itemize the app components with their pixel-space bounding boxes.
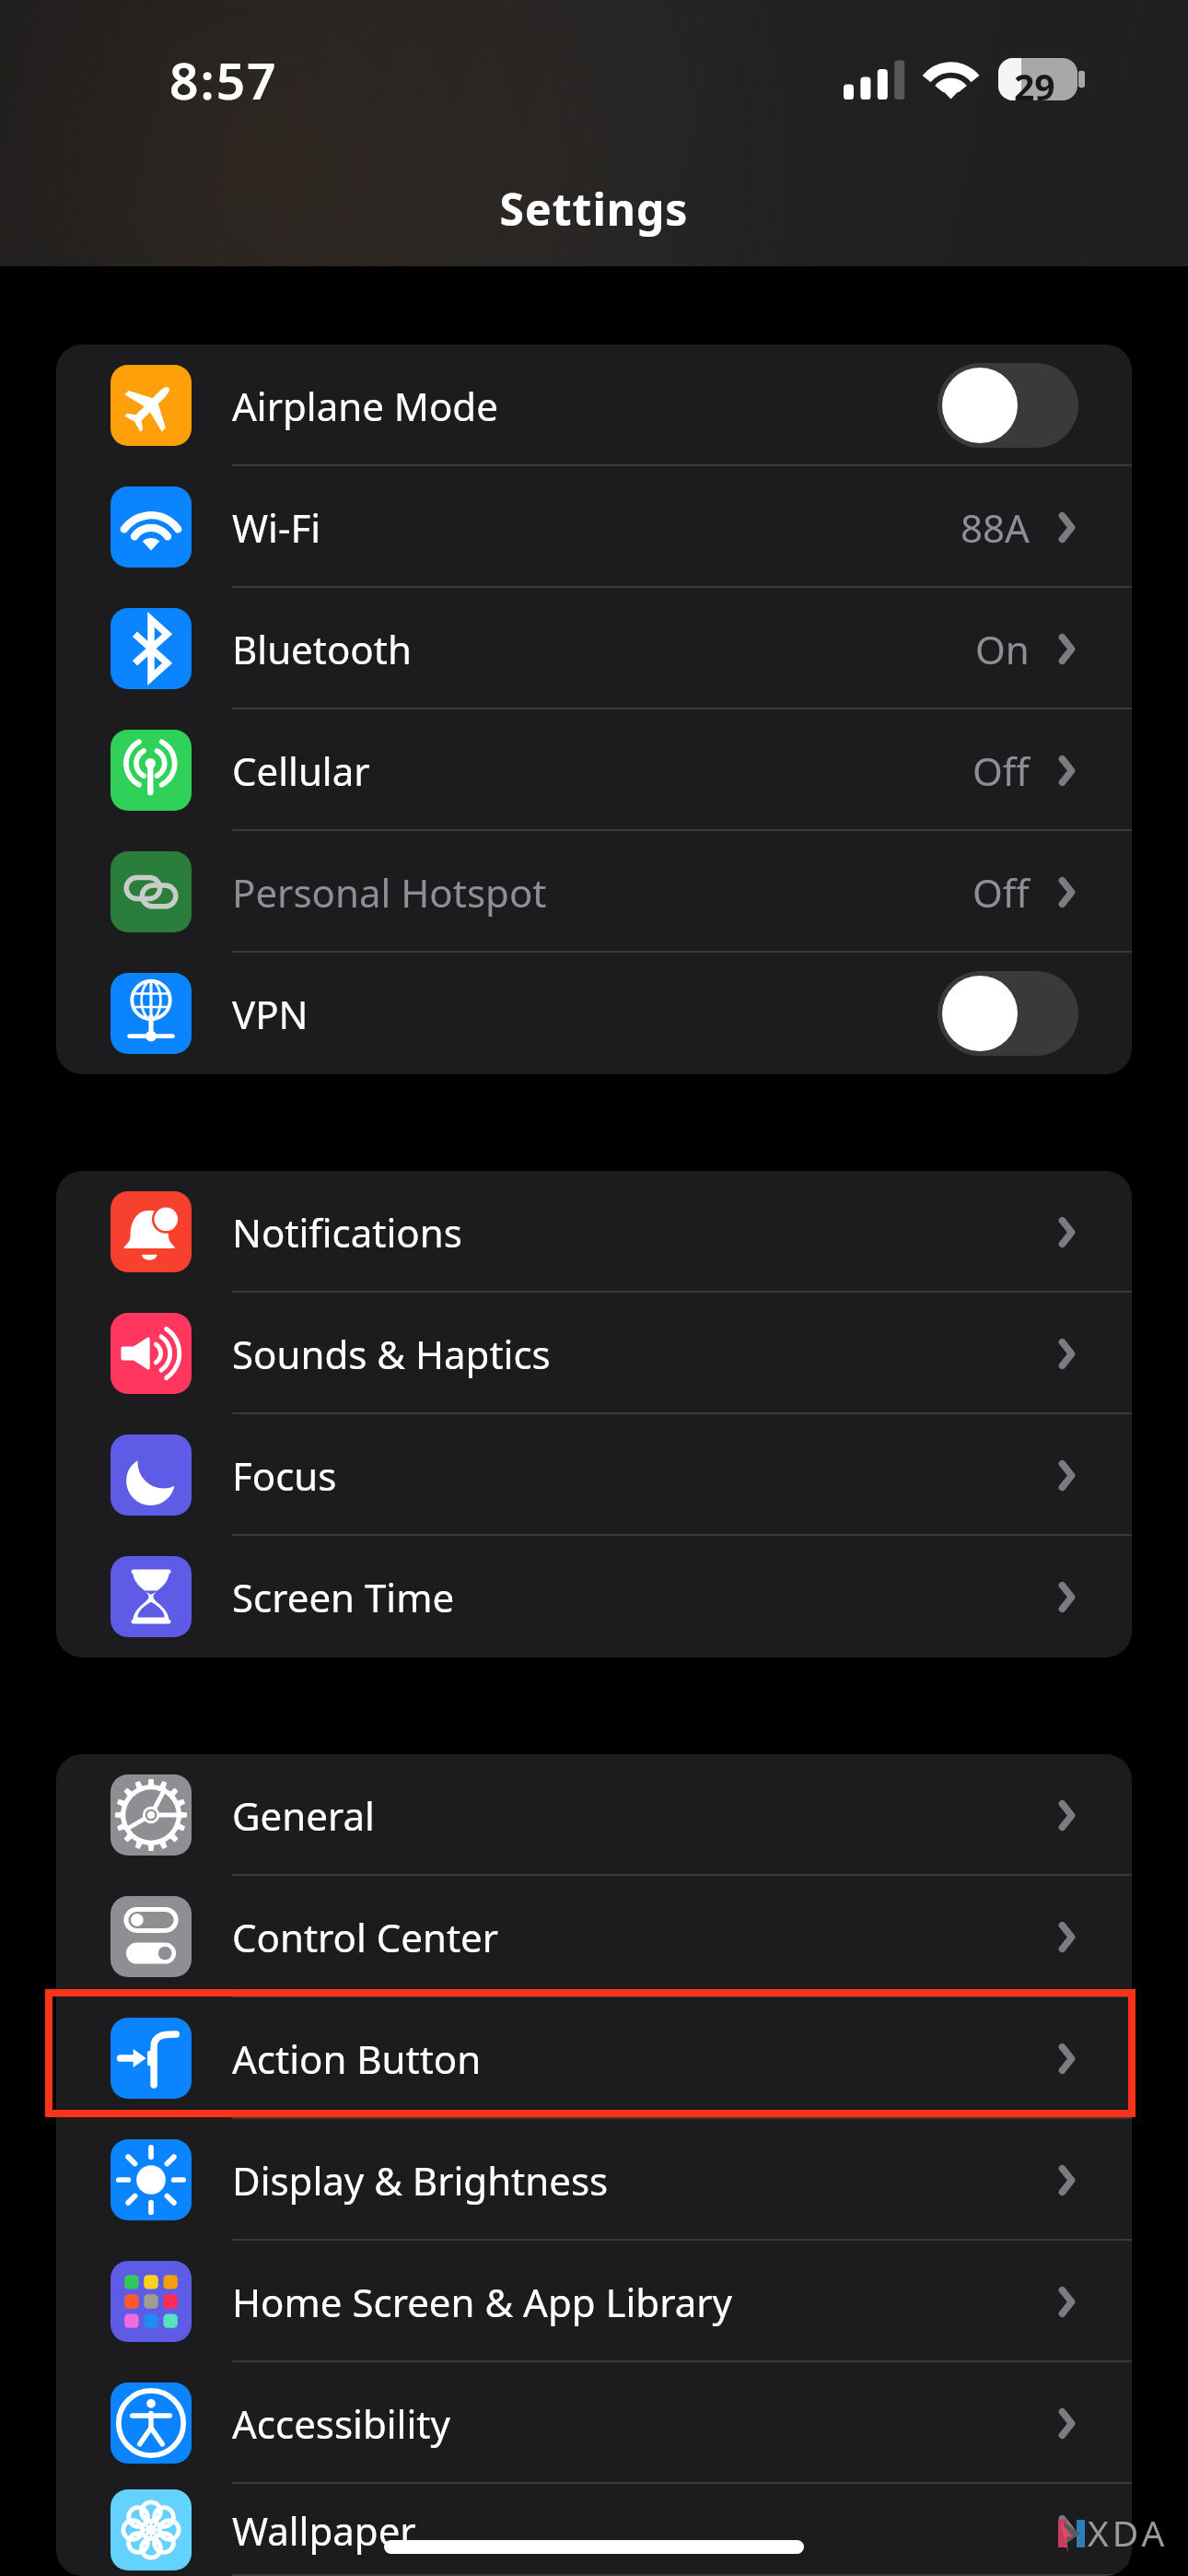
- button[interactable]: VPN: [56, 953, 1132, 1074]
- staticText: VPN: [232, 988, 309, 1040]
- staticText: Airplane Mode: [232, 380, 498, 432]
- staticText: Focus: [232, 1449, 337, 1502]
- button[interactable]: Cellular: [56, 709, 1132, 831]
- button[interactable]: Bluetooth: [56, 588, 1132, 709]
- staticText: 88A: [961, 501, 1030, 554]
- staticText: Off: [973, 744, 1030, 797]
- button[interactable]: Toggle VPN: [938, 971, 1078, 1056]
- staticText: Sounds & Haptics: [232, 1328, 551, 1380]
- staticText: Control Center: [232, 1911, 499, 1963]
- staticText: Off: [973, 866, 1030, 919]
- staticText: General: [232, 1789, 375, 1842]
- staticText: Accessibility: [232, 2397, 450, 2450]
- button[interactable]: Notifications: [56, 1171, 1132, 1293]
- staticText: Screen Time: [232, 1571, 455, 1623]
- button[interactable]: Accessibility: [56, 2362, 1132, 2484]
- button[interactable]: Airplane Mode: [56, 345, 1132, 466]
- button[interactable]: Display & Brightness: [56, 2119, 1132, 2241]
- staticText: Cellular: [232, 744, 370, 797]
- staticText: Action Button: [232, 2032, 482, 2085]
- button[interactable]: Control Center: [56, 1876, 1132, 1997]
- button[interactable]: Personal Hotspot: [56, 831, 1132, 953]
- staticText: Bluetooth: [232, 623, 412, 675]
- button[interactable]: Action Button: [56, 1997, 1132, 2119]
- button[interactable]: Sounds & Haptics: [56, 1293, 1132, 1414]
- button[interactable]: Wi-Fi: [56, 466, 1132, 588]
- staticText: Personal Hotspot: [232, 866, 547, 919]
- staticText: Wallpaper: [232, 2504, 416, 2557]
- staticText: Notifications: [232, 1206, 462, 1259]
- staticText: 8:57: [169, 45, 278, 114]
- staticText: Display & Brightness: [232, 2154, 609, 2207]
- staticText: Home Screen & App Library: [232, 2276, 732, 2328]
- staticText: XDA: [1088, 2508, 1169, 2557]
- button[interactable]: Wallpaper: [56, 2484, 1132, 2576]
- button[interactable]: Home Screen & App Library: [56, 2241, 1132, 2362]
- staticText: On: [975, 623, 1030, 675]
- staticText: 29: [1014, 62, 1055, 111]
- staticText: Settings: [0, 179, 1188, 239]
- button[interactable]: Toggle Airplane Mode: [938, 363, 1078, 448]
- button[interactable]: Screen Time: [56, 1536, 1132, 1657]
- button[interactable]: General: [56, 1754, 1132, 1876]
- button[interactable]: Focus: [56, 1414, 1132, 1536]
- staticText: Wi-Fi: [232, 501, 321, 554]
